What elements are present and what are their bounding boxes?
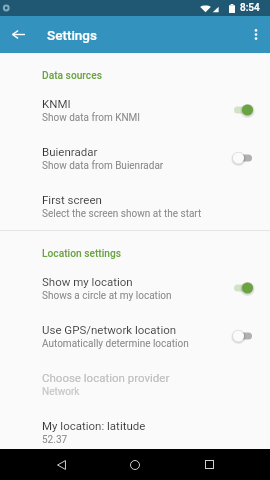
staticText: First screen [42,193,102,206]
staticText: 8:54 [240,2,260,14]
button[interactable]: First screen [0,182,270,230]
staticText: Data sources [42,70,102,82]
staticText: Shows a circle at my location [42,290,172,302]
staticText: Buienradar [42,145,98,158]
button[interactable]: KNMI [0,86,270,134]
button[interactable]: Home [113,449,157,480]
button[interactable]: Recent apps [187,449,231,480]
button[interactable]: Use GPS/network location [0,312,270,360]
button[interactable]: Buienradar [0,134,270,182]
button[interactable]: Show my location [0,264,270,312]
button[interactable]: Back [39,449,83,480]
button[interactable]: My location: latitude [0,408,270,449]
staticText: Show data from KNMI [42,112,140,124]
staticText: KNMI [42,97,71,110]
staticText: Select the screen shown at the start [42,208,202,220]
staticText: Show data from Buienradar [42,160,164,172]
staticText: 52.37 [42,434,68,446]
staticText: Show my location [42,275,133,288]
button[interactable]: More options [241,16,270,53]
button[interactable]: Choose location provider [0,360,270,408]
staticText: Settings [47,27,97,43]
staticText: Location settings [42,248,121,260]
staticText: Use GPS/network location [42,323,177,336]
staticText: My location: latitude [42,419,146,432]
staticText: Network [42,386,80,398]
staticText: Automatically determine location [42,338,189,350]
button[interactable]: Back [0,16,37,53]
staticText: Choose location provider [42,371,170,384]
